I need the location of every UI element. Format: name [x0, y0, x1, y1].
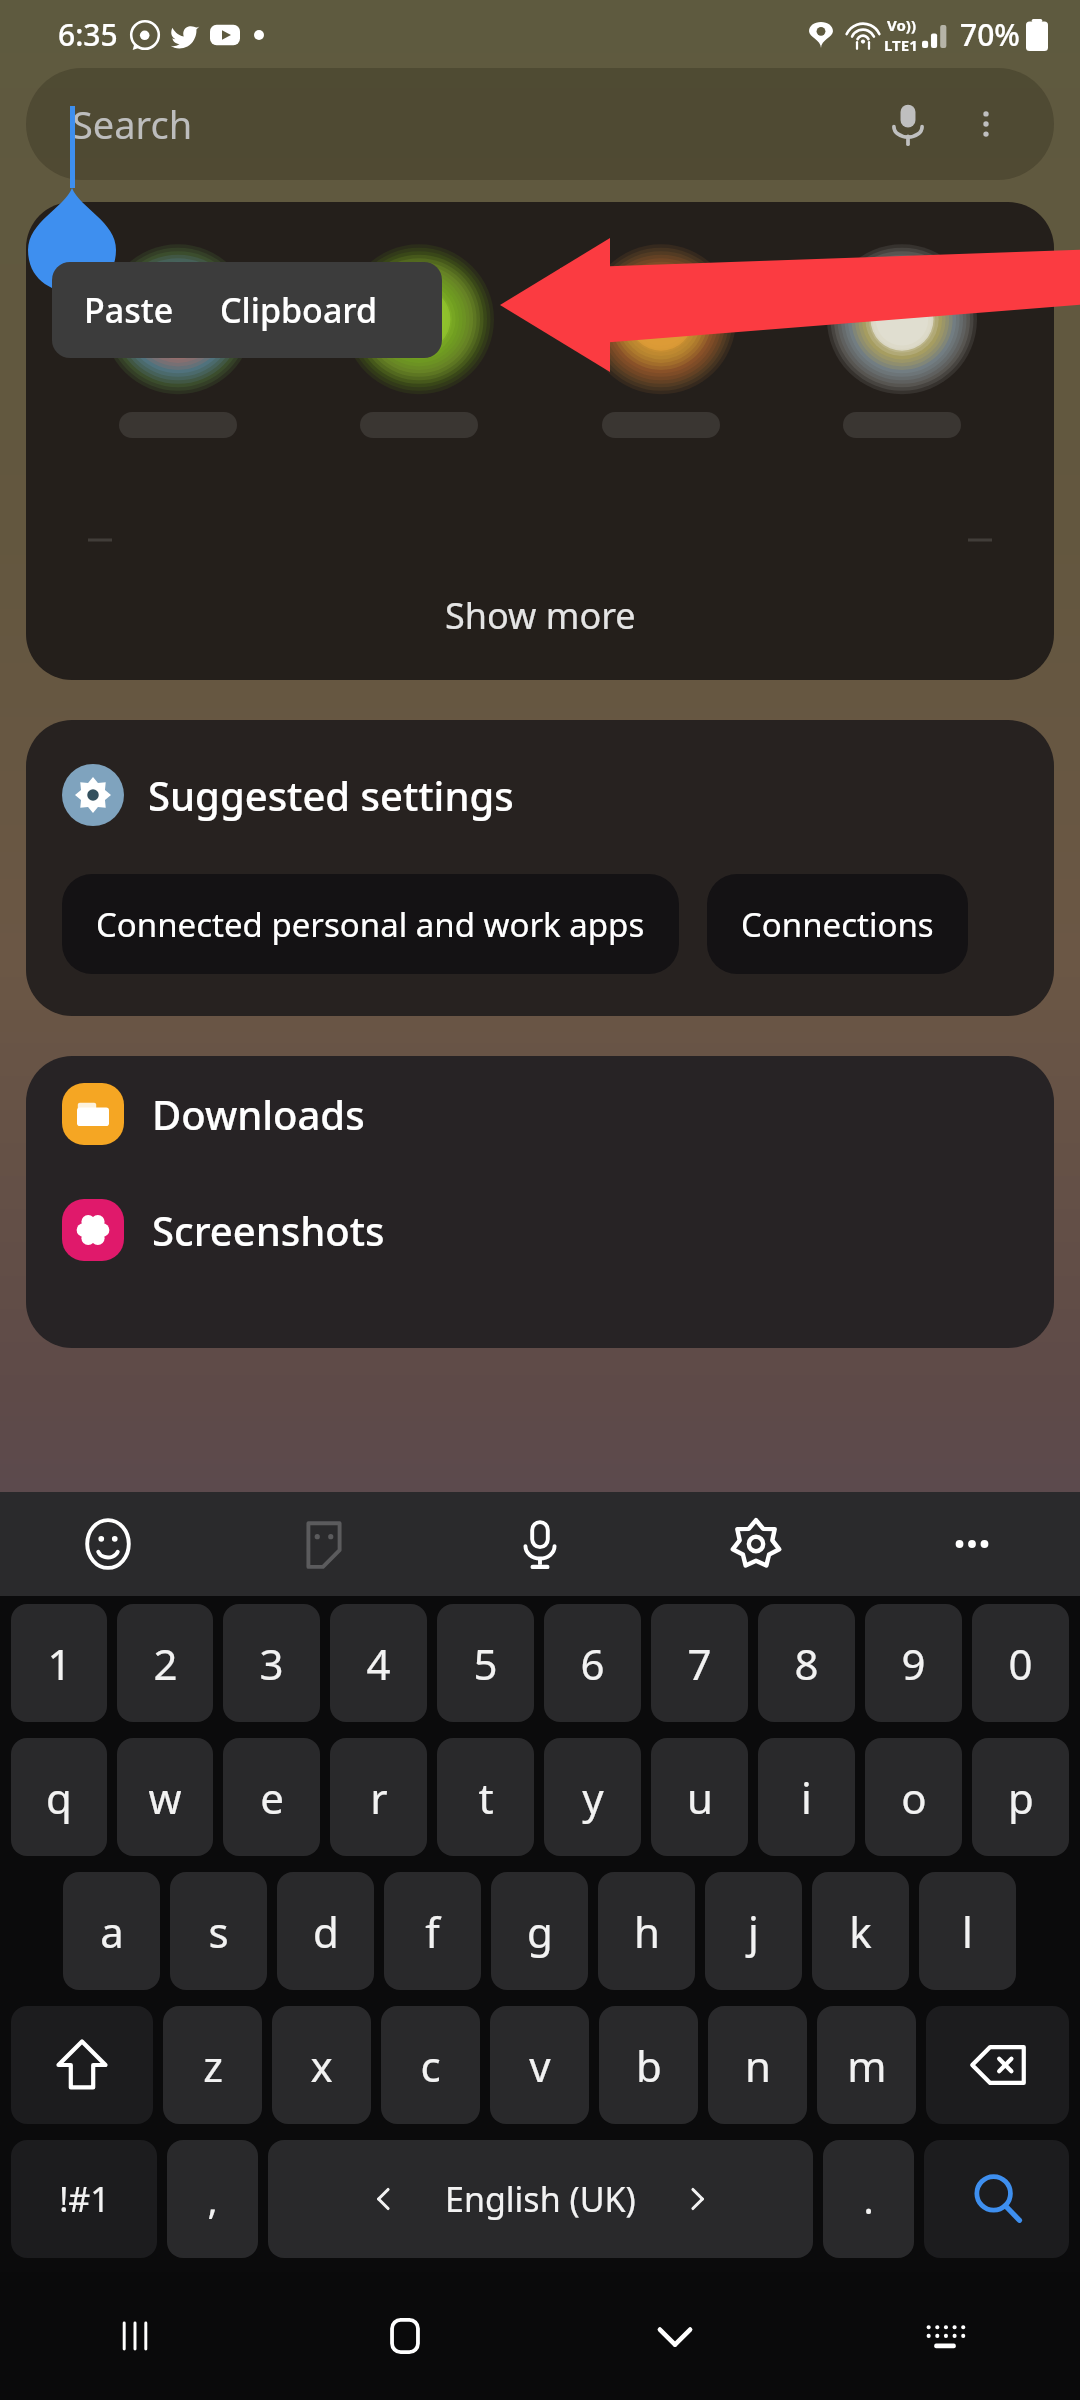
- button[interactable]: Shift: [11, 2006, 153, 2124]
- button[interactable]: Backspace: [926, 2006, 1069, 2124]
- button[interactable]: Recent apps: [0, 2272, 270, 2400]
- button[interactable]: n: [708, 2006, 807, 2124]
- button[interactable]: b: [599, 2006, 698, 2124]
- button[interactable]: y: [544, 1738, 641, 1856]
- staticText: q: [46, 1769, 72, 1826]
- button[interactable]: k: [812, 1872, 909, 1990]
- button[interactable]: Voice search: [876, 92, 940, 156]
- button[interactable]: Downloads: [26, 1056, 1054, 1172]
- button[interactable]: 3: [223, 1604, 320, 1722]
- staticText: f: [425, 1903, 440, 1960]
- staticText: 7: [687, 1635, 712, 1692]
- button[interactable]: t: [437, 1738, 534, 1856]
- button[interactable]: z: [163, 2006, 262, 2124]
- staticText: 4: [366, 1635, 391, 1692]
- button[interactable]: More options: [958, 96, 1014, 152]
- button[interactable]: !#1: [11, 2140, 157, 2258]
- staticText: Show more: [445, 591, 636, 640]
- button[interactable]: Connected personal and work apps: [62, 874, 679, 974]
- button[interactable]: h: [598, 1872, 695, 1990]
- button[interactable]: Connections: [707, 874, 968, 974]
- button[interactable]: Hide keyboard: [540, 2272, 810, 2400]
- staticText: k: [849, 1903, 872, 1960]
- button[interactable]: Screenshots: [26, 1172, 1054, 1288]
- button[interactable]: a: [63, 1872, 160, 1990]
- staticText: Vo)): [887, 15, 916, 35]
- button[interactable]: 2: [117, 1604, 213, 1722]
- staticText: v: [529, 2037, 551, 2094]
- button[interactable]: [571, 248, 751, 438]
- button[interactable]: 6: [544, 1604, 641, 1722]
- button[interactable]: s: [170, 1872, 267, 1990]
- button[interactable]: 8: [758, 1604, 855, 1722]
- button[interactable]: e: [223, 1738, 320, 1856]
- button[interactable]: Search: [26, 68, 1054, 180]
- button[interactable]: [88, 248, 268, 438]
- staticText: b: [636, 2037, 662, 2094]
- button[interactable]: u: [651, 1738, 748, 1856]
- staticText: z: [203, 2037, 223, 2094]
- button[interactable]: m: [817, 2006, 916, 2124]
- staticText: y: [582, 1769, 604, 1826]
- staticText: 9: [901, 1635, 926, 1692]
- button[interactable]: v: [490, 2006, 589, 2124]
- button[interactable]: o: [865, 1738, 962, 1856]
- button[interactable]: Switch keyboard: [810, 2272, 1080, 2400]
- staticText: s: [208, 1903, 229, 1960]
- button[interactable]: f: [384, 1872, 481, 1990]
- button[interactable]: c: [381, 2006, 480, 2124]
- staticText: x: [310, 2037, 333, 2094]
- button[interactable]: Show more: [26, 550, 1054, 680]
- button[interactable]: Stickers: [216, 1492, 432, 1596]
- staticText: Clipboard: [220, 287, 378, 333]
- button[interactable]: i: [758, 1738, 855, 1856]
- staticText: Connections: [741, 902, 934, 947]
- staticText: LTE1: [884, 35, 918, 55]
- staticText: d: [313, 1903, 339, 1960]
- button[interactable]: 5: [437, 1604, 534, 1722]
- button[interactable]: ,: [167, 2140, 258, 2258]
- staticText: a: [100, 1903, 124, 1960]
- button[interactable]: 9: [865, 1604, 962, 1722]
- staticText: 3: [259, 1635, 284, 1692]
- button[interactable]: 1: [11, 1604, 107, 1722]
- button[interactable]: 4: [330, 1604, 427, 1722]
- staticText: Suggested settings: [148, 768, 514, 822]
- button[interactable]: Voice input: [432, 1492, 648, 1596]
- button[interactable]: j: [705, 1872, 802, 1990]
- button[interactable]: Paste: [66, 277, 192, 343]
- staticText: j: [748, 1903, 759, 1960]
- button[interactable]: 0: [972, 1604, 1069, 1722]
- button[interactable]: 7: [651, 1604, 748, 1722]
- staticText: 6: [580, 1635, 605, 1692]
- button[interactable]: English (UK): [268, 2140, 813, 2258]
- staticText: c: [420, 2037, 441, 2094]
- button[interactable]: Suggested settings: [26, 720, 1054, 1016]
- button[interactable]: Keyboard settings: [648, 1492, 864, 1596]
- button[interactable]: p: [972, 1738, 1069, 1856]
- button[interactable]: .: [823, 2140, 914, 2258]
- button[interactable]: [329, 248, 509, 438]
- staticText: 70%: [960, 14, 1020, 55]
- button[interactable]: Clipboard: [206, 277, 392, 343]
- button[interactable]: g: [491, 1872, 588, 1990]
- button[interactable]: Search: [924, 2140, 1069, 2258]
- button[interactable]: x: [272, 2006, 371, 2124]
- staticText: 2: [153, 1635, 178, 1692]
- button[interactable]: l: [919, 1872, 1016, 1990]
- button[interactable]: Home: [270, 2272, 540, 2400]
- button[interactable]: d: [277, 1872, 374, 1990]
- staticText: 0: [1008, 1635, 1033, 1692]
- button[interactable]: r: [330, 1738, 427, 1856]
- staticText: 6:35: [58, 14, 118, 55]
- staticText: 1: [47, 1635, 72, 1692]
- button[interactable]: Emoji: [0, 1492, 216, 1596]
- button[interactable]: q: [11, 1738, 107, 1856]
- button[interactable]: More: [864, 1492, 1080, 1596]
- staticText: p: [1008, 1769, 1034, 1826]
- staticText: .: [863, 2173, 874, 2225]
- button[interactable]: w: [117, 1738, 213, 1856]
- button[interactable]: [812, 248, 992, 438]
- staticText: h: [634, 1903, 660, 1960]
- staticText: u: [687, 1769, 713, 1826]
